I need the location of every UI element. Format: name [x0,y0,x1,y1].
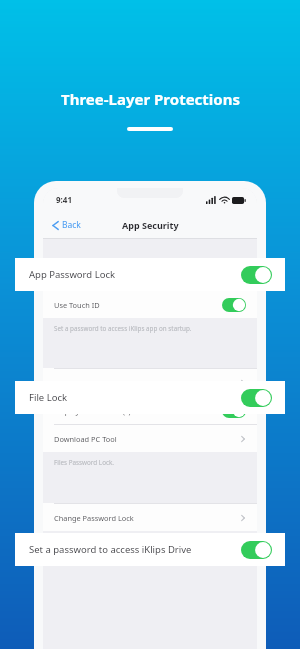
button[interactable]: Use Touch ID [43,291,257,318]
button[interactable]: App Password Lock [15,258,285,291]
staticText: Change Password Lock [54,513,134,523]
staticText: Set a password to access iKlips app on s… [54,324,192,333]
button[interactable]: Download PC Tool [43,425,257,452]
button[interactable]: Back [43,215,87,235]
staticText: 9:41 [56,194,72,205]
staticText: Change Password Lock [54,272,134,282]
staticText: Back [62,219,81,231]
staticText: Files Password Lock. [54,458,115,467]
staticText: Three-Layer Protections [61,89,240,109]
button[interactable]: Set a password to access iKlips Drive [15,533,285,566]
staticText: App Password Lock [29,268,116,281]
button[interactable]: Change Password Lock [43,369,257,396]
button[interactable]: Change Password Lock [43,504,257,531]
staticText: Display Secured File(s) [54,406,131,416]
button[interactable]: Display Secured File(s) [43,397,257,424]
button[interactable]: File Lock [15,381,285,414]
staticText: Download PC Tool [54,434,117,444]
staticText: File Lock [29,391,68,404]
button[interactable]: Change Password Lock [43,263,257,290]
staticText: Set a password to access iKlips Drive [29,543,192,556]
staticText: App Security [122,219,179,231]
staticText: Use Touch ID [54,300,100,310]
